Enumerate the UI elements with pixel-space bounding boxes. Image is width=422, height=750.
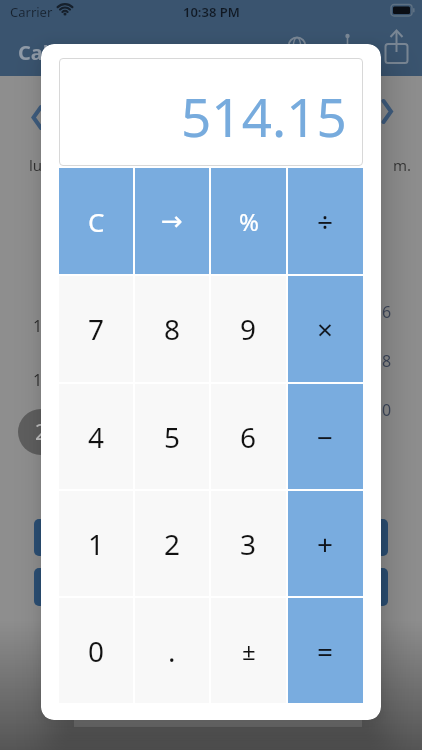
staticText: 0 [88, 632, 105, 670]
button[interactable]: 0 [59, 598, 133, 703]
button[interactable]: % [211, 168, 286, 274]
button[interactable]: → [135, 168, 209, 274]
staticText: 6 [240, 418, 257, 456]
button[interactable]: 3 [211, 491, 286, 596]
staticText: m. [393, 155, 412, 175]
button[interactable]: 2 [135, 491, 209, 596]
button[interactable]: 1 [59, 491, 133, 596]
staticText: 5 [164, 418, 181, 456]
staticText: 8 [382, 350, 392, 372]
staticText: + [317, 525, 334, 563]
staticText: 6 [382, 301, 392, 323]
staticText: 9 [240, 310, 257, 348]
staticText: 8 [164, 310, 181, 348]
staticText: 10:38 PM [183, 3, 240, 21]
button[interactable]: = [288, 598, 363, 703]
staticText: 4 [88, 418, 105, 456]
button[interactable]: ± [211, 598, 286, 703]
staticText: × [317, 310, 334, 348]
button[interactable]: . [135, 598, 209, 703]
button[interactable]: + [288, 491, 363, 596]
button[interactable]: 8 [135, 276, 209, 382]
staticText: 1 [33, 315, 43, 337]
staticText: 0 [382, 399, 392, 421]
staticText: 3 [240, 525, 257, 563]
button[interactable]: − [288, 384, 363, 489]
button[interactable]: 9 [211, 276, 286, 382]
staticText: Carrier [10, 3, 53, 21]
staticText: lu [29, 155, 43, 175]
staticText: 2 [35, 418, 48, 447]
staticText: ± [242, 634, 256, 667]
button[interactable]: C [59, 168, 133, 274]
staticText: 1 [88, 525, 105, 563]
button[interactable]: 514.15 [59, 58, 363, 166]
staticText: = [317, 632, 334, 670]
staticText: 1 [33, 369, 43, 391]
button[interactable]: × [288, 276, 363, 382]
staticText: Calculator [18, 39, 121, 66]
staticText: 514.15 [181, 80, 347, 152]
staticText: ÷ [317, 202, 334, 240]
button[interactable]: 4 [59, 384, 133, 489]
staticText: C [88, 204, 105, 239]
staticText: 7 [88, 310, 105, 348]
staticText: % [239, 205, 259, 238]
button[interactable]: 6 [211, 384, 286, 489]
staticText: → [161, 206, 183, 236]
staticText: − [317, 418, 334, 456]
button[interactable]: 7 [59, 276, 133, 382]
staticText: 2 [164, 525, 181, 563]
staticText: . [168, 632, 176, 670]
button[interactable]: 5 [135, 384, 209, 489]
button[interactable]: ÷ [288, 168, 363, 274]
